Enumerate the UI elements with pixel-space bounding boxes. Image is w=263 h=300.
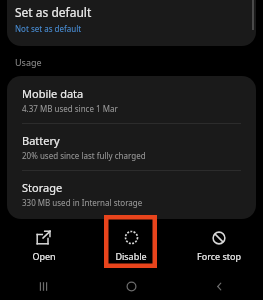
staticText: Disable [115,250,147,262]
other: Open [36,230,51,245]
staticText: Usage [15,56,42,68]
button[interactable]: Force stop [175,225,263,268]
button[interactable]: Back [175,272,263,300]
staticText: 4.37 MB used since 1 Mar [22,103,118,114]
staticText: Open [32,250,56,262]
button[interactable]: Battery [7,124,256,170]
staticText: Storage [22,180,63,195]
button[interactable]: Mobile data [7,76,256,123]
staticText: Set as default [15,4,92,20]
staticText: Force stop [197,250,241,262]
staticText: Mobile data [22,86,84,101]
button[interactable]: Set as default [7,0,256,34]
button[interactable]: Storage [7,171,256,219]
button[interactable]: Recents [0,272,87,300]
other: Force stop [212,231,226,245]
staticText: Battery [22,133,60,148]
staticText: Not set as default [15,23,82,34]
button[interactable]: Open [0,224,87,268]
button[interactable]: Home [87,272,175,300]
staticText: 20% used since last fully charged [22,150,146,161]
staticText: 330 MB used in Internal storage [22,197,143,208]
other: Disable [124,230,139,245]
button[interactable]: Disable [87,224,175,268]
